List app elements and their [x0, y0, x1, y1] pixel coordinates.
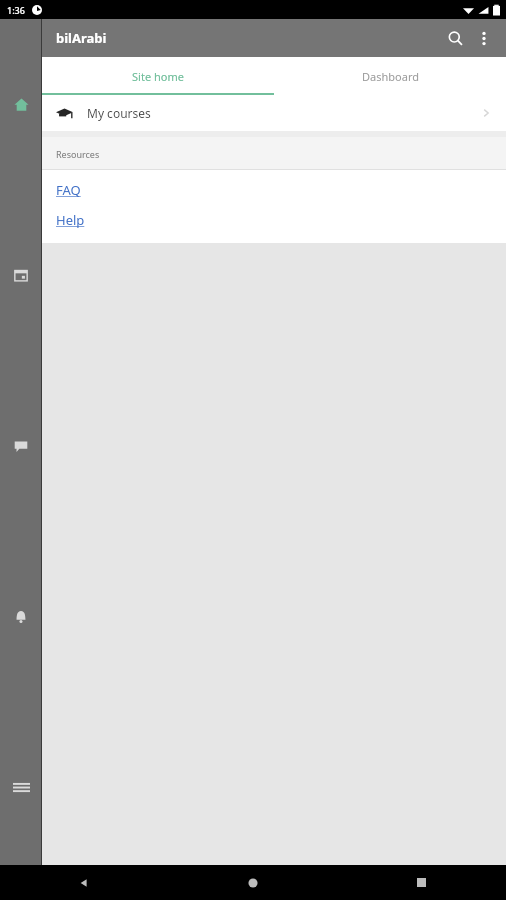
staticText: bilArabi: [56, 29, 107, 47]
staticText: Resources: [56, 148, 100, 160]
button[interactable]: Back: [0, 865, 168, 900]
button[interactable]: Calendar: [0, 262, 42, 288]
staticText: Dashboard: [362, 69, 419, 84]
button[interactable]: Help: [42, 209, 506, 231]
button[interactable]: Dashboard: [274, 57, 506, 95]
staticText: My courses: [87, 105, 151, 121]
button[interactable]: FAQ: [42, 179, 506, 201]
button[interactable]: Search: [440, 23, 470, 53]
staticText: 1:36: [7, 4, 25, 16]
staticText: FAQ: [56, 181, 81, 199]
button[interactable]: Menu: [0, 775, 42, 801]
button[interactable]: My courses: [42, 95, 506, 131]
button[interactable]: Site home: [42, 57, 274, 95]
staticText: Site home: [132, 69, 184, 84]
button[interactable]: Messages: [0, 433, 42, 459]
button[interactable]: Recent apps: [337, 865, 506, 900]
button[interactable]: Home: [168, 865, 337, 900]
staticText: Help: [56, 211, 85, 229]
button[interactable]: More options: [470, 24, 498, 52]
button[interactable]: Notifications: [0, 604, 42, 630]
button[interactable]: Home: [0, 91, 42, 117]
